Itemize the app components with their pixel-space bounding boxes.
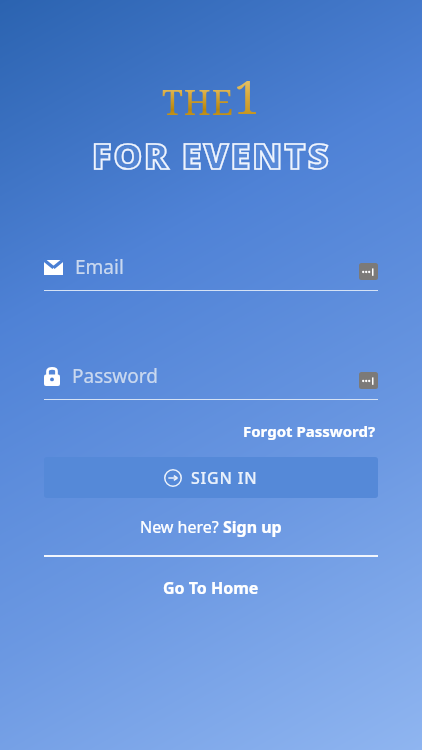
staticText: Password [72,363,158,389]
staticText: Go To Home [163,577,259,599]
button[interactable]: Email [44,254,378,291]
staticText: THE [162,79,234,125]
staticText: Email [75,254,124,280]
staticText: FOR EVENTS [92,131,331,180]
button[interactable]: More options [359,372,378,389]
button[interactable]: Forgot Password? [241,418,378,444]
button[interactable]: More options [359,263,378,280]
staticText: SIGN IN [191,467,258,489]
other: Password [44,367,60,386]
button[interactable]: New here? Sign up [134,513,288,541]
button[interactable]: Go To Home [155,573,267,603]
staticText: 1 [234,65,260,128]
button[interactable]: SIGN IN [44,457,378,498]
staticText: Forgot Password? [243,421,376,441]
staticText: New here? Sign up [140,516,282,538]
staticText: FOR EVENTS [92,131,331,180]
button[interactable]: Password [44,363,378,400]
other: Email [44,260,63,275]
